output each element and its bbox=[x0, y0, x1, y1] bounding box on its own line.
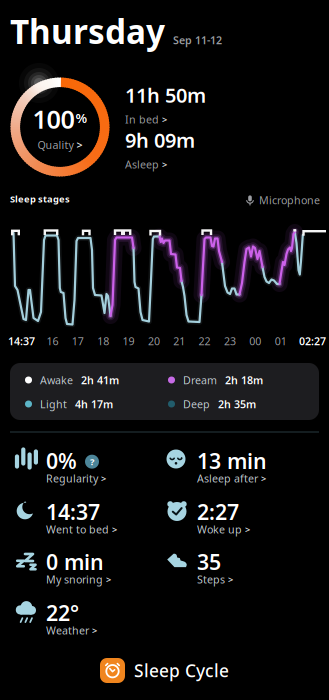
staticText: > bbox=[106, 573, 111, 586]
staticText: 13 min bbox=[197, 446, 267, 475]
staticText: Dream bbox=[183, 373, 217, 387]
staticText: % bbox=[75, 109, 87, 127]
staticText: 22 bbox=[199, 334, 211, 348]
staticText: 100 bbox=[32, 102, 74, 136]
staticText: 4h 17m bbox=[75, 397, 113, 411]
staticText: 00 bbox=[249, 334, 261, 348]
staticText: 2h 41m bbox=[81, 373, 119, 387]
staticText: 17 bbox=[72, 334, 84, 348]
staticText: > bbox=[245, 523, 250, 536]
staticText: ? bbox=[90, 455, 94, 468]
staticText: > bbox=[101, 472, 106, 485]
staticText: Sleep stages bbox=[10, 193, 70, 205]
staticText: 22° bbox=[46, 598, 79, 627]
staticText: > bbox=[112, 523, 117, 536]
staticText: Thursday bbox=[10, 9, 165, 53]
staticText: 2h 18m bbox=[225, 373, 263, 387]
staticText: Asleep after bbox=[197, 471, 258, 485]
staticText: > bbox=[228, 573, 233, 586]
staticText: Sep 11-12 bbox=[173, 33, 222, 47]
button[interactable]: 11h 50m bbox=[125, 82, 206, 126]
staticText: Sleep Cycle bbox=[134, 659, 229, 682]
staticText: 35 bbox=[197, 547, 221, 576]
staticText: Weather bbox=[46, 623, 89, 637]
staticText: > bbox=[92, 624, 97, 637]
staticText: In bed bbox=[125, 112, 159, 126]
staticText: 23 bbox=[224, 334, 236, 348]
staticText: 9h 09m bbox=[125, 127, 195, 153]
staticText: 14:37 bbox=[8, 334, 35, 348]
staticText: 11h 50m bbox=[125, 82, 206, 108]
staticText: 0% bbox=[46, 446, 77, 475]
staticText: Went to bed bbox=[46, 522, 109, 536]
button[interactable]: 0% bbox=[14, 446, 106, 485]
staticText: > bbox=[162, 158, 167, 170]
staticText: Awake bbox=[40, 373, 73, 387]
staticText: 19 bbox=[122, 334, 134, 348]
staticText: 14:37 bbox=[46, 497, 100, 526]
staticText: 0 min bbox=[46, 547, 104, 576]
staticText: 16 bbox=[46, 334, 58, 348]
staticText: Asleep bbox=[125, 157, 159, 171]
staticText: > bbox=[76, 138, 82, 152]
button[interactable]: Microphone bbox=[246, 193, 320, 207]
button[interactable]: 22° bbox=[14, 598, 97, 637]
button[interactable]: 13 min bbox=[165, 446, 267, 485]
staticText: 01 bbox=[275, 334, 287, 348]
staticText: Deep bbox=[183, 397, 210, 411]
staticText: Light bbox=[40, 397, 67, 411]
staticText: Steps bbox=[197, 572, 225, 586]
button[interactable]: 9h 09m bbox=[125, 127, 195, 171]
button[interactable]: 2:27 bbox=[165, 497, 250, 536]
staticText: 2:27 bbox=[197, 497, 239, 526]
button[interactable]: 14:37 bbox=[14, 497, 117, 536]
button[interactable]: 35 bbox=[165, 547, 233, 586]
staticText: 21 bbox=[173, 334, 185, 348]
button[interactable]: 0 min bbox=[14, 547, 111, 586]
staticText: > bbox=[162, 113, 167, 125]
staticText: Regularity bbox=[46, 471, 98, 485]
button[interactable]: 100 bbox=[32, 102, 87, 152]
staticText: 20 bbox=[148, 334, 160, 348]
staticText: > bbox=[261, 472, 266, 485]
staticText: 02:27 bbox=[299, 334, 326, 348]
staticText: 18 bbox=[97, 334, 109, 348]
staticText: Microphone bbox=[259, 193, 320, 207]
staticText: Woke up bbox=[197, 522, 242, 536]
staticText: Quality bbox=[37, 138, 73, 152]
staticText: 2h 35m bbox=[218, 397, 256, 411]
staticText: My snoring bbox=[46, 572, 103, 586]
